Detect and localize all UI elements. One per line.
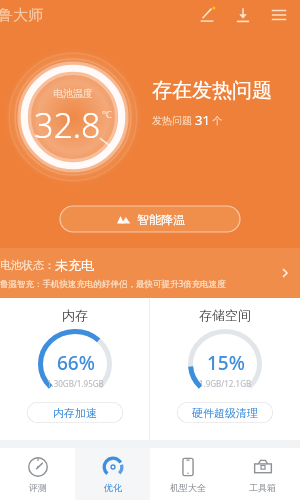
staticText: 1.30GB/1.95GB [47, 378, 104, 389]
button[interactable]: Edit [194, 2, 220, 28]
button[interactable]: 优化 [75, 448, 150, 500]
staticText: 鲁温智充：手机快速充电的好伴侣，最快可提升3倍充电速度 [0, 278, 226, 290]
staticText: 智能降温 [137, 212, 185, 227]
staticText: 优化 [104, 482, 122, 493]
button[interactable]: 硬件超级清理 [177, 402, 273, 423]
staticText: 1.9GB/12.1GB [199, 378, 252, 389]
staticText: 评测 [29, 482, 47, 493]
staticText: 未充电 [55, 257, 94, 273]
staticText: 工具箱 [249, 482, 276, 493]
staticText: 电池状态： [0, 258, 55, 272]
staticText: 存在发热问题 [152, 78, 272, 103]
staticText: 31 [195, 111, 210, 129]
button[interactable]: 机型大全 [150, 448, 225, 500]
staticText: 内存 [62, 307, 88, 323]
staticText: 内存加速 [53, 406, 97, 420]
button[interactable]: 工具箱 [225, 448, 300, 500]
button[interactable]: 内存 [0, 298, 149, 423]
staticText: 机型大全 [170, 482, 206, 493]
staticText: 15% [207, 350, 245, 376]
button[interactable]: Downloads [230, 2, 256, 28]
staticText: 硬件超级清理 [192, 406, 258, 420]
staticText: 32.8 [34, 102, 101, 148]
button[interactable]: 存储空间 [150, 298, 300, 423]
button[interactable]: 内存加速 [27, 402, 123, 423]
staticText: 存储空间 [199, 307, 251, 323]
staticText: 鲁大师 [0, 6, 43, 25]
staticText: 66% [57, 350, 95, 376]
staticText: 个 [210, 113, 223, 127]
staticText: ℃ [102, 107, 112, 121]
button[interactable]: 智能降温 [60, 206, 240, 232]
button[interactable]: Menu [266, 2, 292, 28]
staticText: 电池温度 [53, 87, 93, 100]
staticText: 发热问题 [152, 113, 195, 127]
button[interactable]: 电池状态： [0, 248, 300, 298]
button[interactable]: 评测 [0, 448, 75, 500]
